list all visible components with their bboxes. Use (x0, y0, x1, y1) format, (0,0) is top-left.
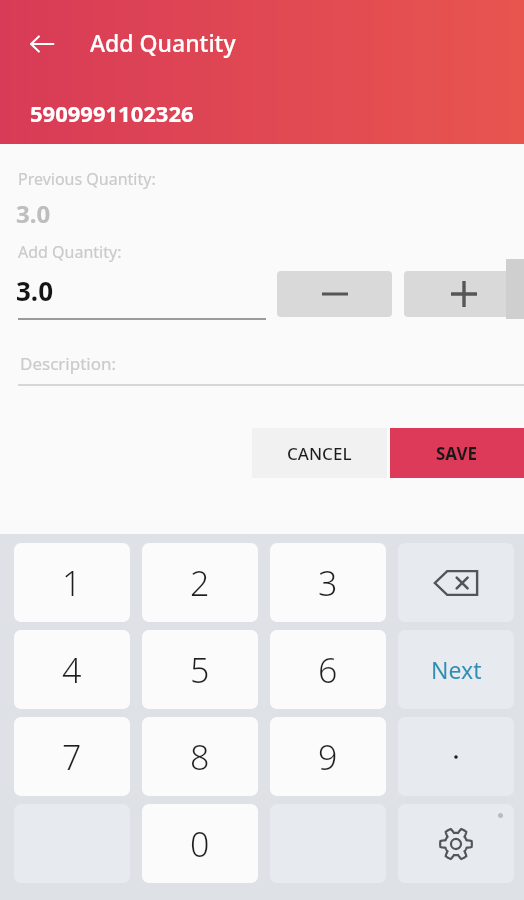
staticText: Next (431, 654, 482, 685)
staticText: 9 (318, 734, 338, 780)
staticText: 2 (190, 560, 210, 606)
button[interactable]: 5 (142, 630, 258, 709)
button[interactable]: Backspace (398, 543, 514, 622)
button[interactable]: 1 (14, 543, 130, 622)
button[interactable]: Back (20, 22, 64, 66)
button[interactable]: 0 (142, 804, 258, 883)
staticText: Add Quantity (90, 27, 236, 58)
button[interactable]: 7 (14, 717, 130, 796)
button[interactable]: Decrease quantity (277, 271, 392, 317)
button[interactable]: CANCEL (252, 428, 387, 478)
staticText: 3 (318, 560, 338, 606)
staticText: Add Quantity: (18, 241, 122, 263)
staticText: 0 (190, 821, 210, 867)
staticText: 5909991102326 (30, 98, 194, 128)
staticText: SAVE (436, 442, 478, 465)
staticText: 3.0 (16, 197, 51, 230)
button[interactable]: 3 (270, 543, 386, 622)
staticText: Previous Quantity: (18, 168, 156, 190)
staticText: CANCEL (287, 442, 352, 465)
button[interactable]: Increase quantity (404, 271, 524, 317)
button[interactable]: Keyboard settings (398, 804, 514, 883)
button[interactable]: 2 (142, 543, 258, 622)
staticText: 1 (62, 560, 82, 606)
button[interactable]: 8 (142, 717, 258, 796)
staticText: 6 (318, 647, 338, 693)
button[interactable]: Decimal point (398, 717, 514, 796)
button[interactable]: SAVE (390, 428, 524, 478)
staticText: Description: (20, 352, 117, 375)
button[interactable]: 9 (270, 717, 386, 796)
button[interactable]: 4 (14, 630, 130, 709)
staticText: 7 (62, 734, 82, 780)
button[interactable]: Next (398, 630, 514, 709)
staticText: 3.0 (16, 273, 54, 308)
staticText: 4 (62, 647, 82, 693)
staticText: 8 (190, 734, 210, 780)
staticText: 5 (190, 647, 210, 693)
button[interactable]: 6 (270, 630, 386, 709)
